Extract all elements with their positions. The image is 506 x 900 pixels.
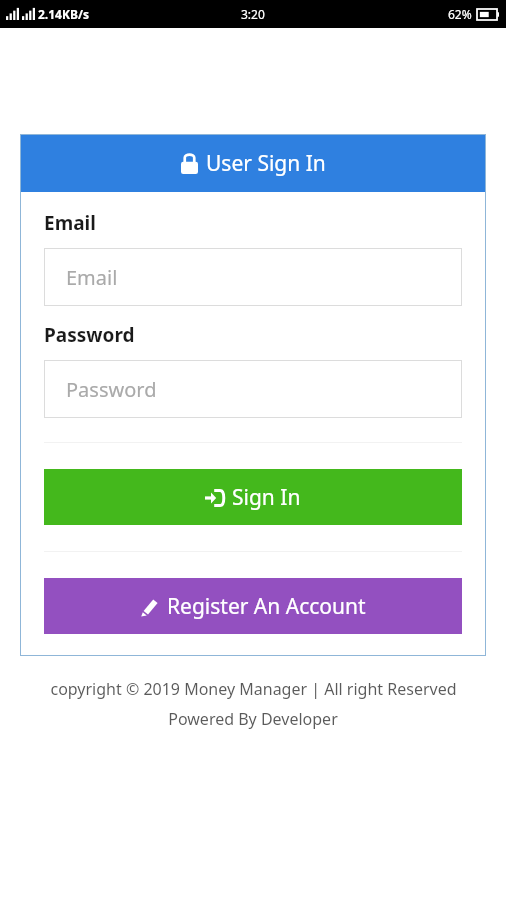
button[interactable]: Password [44,360,462,418]
button[interactable]: Email [44,248,462,306]
staticText: Register An Account [167,592,366,621]
staticText: copyright © 2019 Money Manager | All rig… [50,678,457,700]
staticText: Email [66,264,118,291]
staticText: Sign In [232,483,301,512]
staticText: User Sign In [206,149,326,178]
other: Register [140,597,160,617]
button[interactable]: Register [44,578,462,634]
staticText: 2.14KB/s [38,6,89,22]
other: Lock [181,153,198,174]
staticText: Password [44,322,135,348]
staticText: 62% [448,6,472,22]
button[interactable]: Sign In [44,469,462,525]
other: Sign In [205,488,225,508]
staticText: Powered By Developer [168,708,338,730]
staticText: 3:20 [241,6,265,22]
staticText: Password [66,376,157,403]
staticText: Email [44,210,96,236]
button[interactable]: Lock [20,134,486,192]
